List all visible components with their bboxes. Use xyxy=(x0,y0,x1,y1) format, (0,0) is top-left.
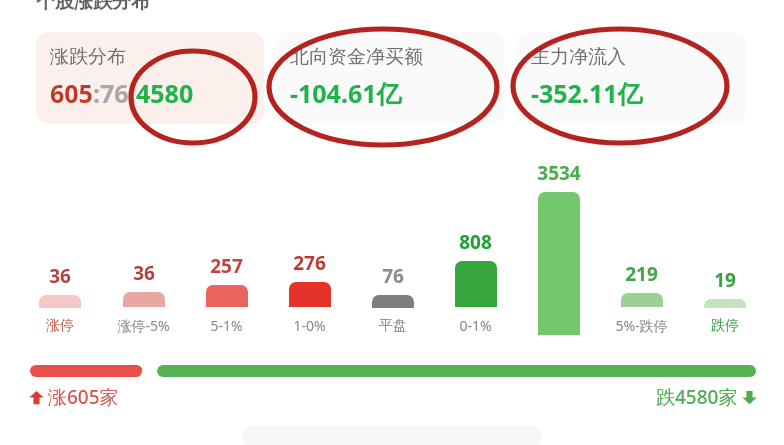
staticText: :76: xyxy=(93,76,136,110)
staticText: 219 xyxy=(625,261,658,287)
staticText: -352.11亿 xyxy=(531,76,643,110)
button[interactable]: 36 xyxy=(102,160,185,335)
button[interactable]: 北向资金净买额 xyxy=(276,32,505,124)
staticText: 5-1% xyxy=(210,316,243,335)
staticText: 涨停-5% xyxy=(117,316,170,335)
other: Down xyxy=(741,389,758,406)
staticText: 主力净流入 xyxy=(531,45,626,69)
staticText: 北向资金净买额 xyxy=(290,45,423,69)
staticText: 36 xyxy=(133,260,155,286)
staticText: 808 xyxy=(459,229,492,255)
button[interactable]: 3534 xyxy=(517,160,600,335)
button[interactable]: 涨跌分布 xyxy=(36,32,264,124)
button[interactable]: 19 xyxy=(683,160,766,335)
staticText: 605 xyxy=(50,76,93,110)
staticText: 19 xyxy=(714,267,736,293)
staticText: 3534 xyxy=(537,160,581,186)
button[interactable]: 主力净流入 xyxy=(517,32,746,124)
button[interactable]: 76 xyxy=(351,160,434,335)
button[interactable]: 跌4580家 xyxy=(656,384,758,410)
staticText: 1-0% xyxy=(293,316,326,335)
staticText: -104.61亿 xyxy=(290,76,402,110)
staticText: 涨跌分布 xyxy=(50,45,126,69)
staticText: 276 xyxy=(293,250,326,276)
staticText: 36 xyxy=(49,263,71,289)
staticText: 个股涨跌分布 xyxy=(36,0,150,12)
staticText: 涨605家 xyxy=(48,384,119,410)
staticText: 平盘 xyxy=(379,317,407,335)
staticText: 5%-跌停 xyxy=(615,316,668,335)
button[interactable]: Up xyxy=(28,384,119,410)
button[interactable]: 808 xyxy=(434,160,517,335)
staticText: 4580 xyxy=(136,76,194,110)
staticText: 跌4580家 xyxy=(656,384,738,410)
button[interactable]: 36 xyxy=(18,160,102,335)
other: Up xyxy=(28,389,45,406)
staticText: 涨停 xyxy=(46,317,74,335)
staticText: 0-1% xyxy=(459,316,492,335)
staticText: 跌停 xyxy=(711,317,739,335)
staticText: 257 xyxy=(210,253,243,279)
button[interactable]: 219 xyxy=(600,160,683,335)
staticText: 76 xyxy=(382,263,404,289)
button[interactable]: 257 xyxy=(185,160,268,335)
button[interactable]: 276 xyxy=(268,160,351,335)
